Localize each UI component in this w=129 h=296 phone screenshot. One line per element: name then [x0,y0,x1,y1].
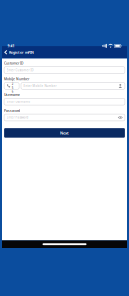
staticText: Enter Password [6,116,28,119]
staticText: Customer ID [4,61,23,65]
staticText: Next [60,130,69,136]
staticText: Username [4,92,20,97]
button[interactable]: +256 [4,82,19,89]
staticText: Enter Mobile Number [23,84,56,88]
staticText: +256 [12,78,14,94]
staticText: Register mPIN [9,50,34,55]
button[interactable]: Register mPIN [2,44,127,58]
staticText: 9:41 [7,43,14,48]
staticText: Password [4,108,20,113]
button[interactable]: Choose contact [118,84,122,88]
button[interactable]: Next [4,128,125,138]
staticText: Mobile Number [4,77,29,81]
staticText: Enter Customer ID [6,68,33,72]
button[interactable]: Show password [118,115,122,120]
staticText: Enter Username [6,100,30,104]
